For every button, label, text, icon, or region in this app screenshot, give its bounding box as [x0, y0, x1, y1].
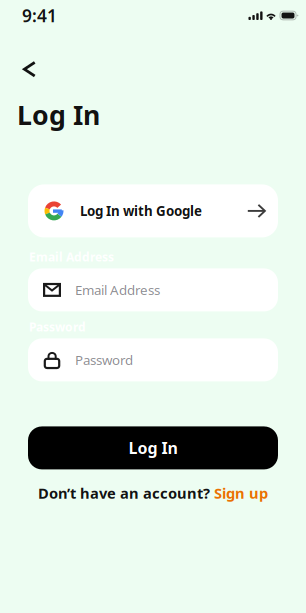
staticText: Don’t have an account?	[38, 483, 214, 503]
button[interactable]: Back	[0, 55, 50, 84]
button[interactable]: Log In with Google	[28, 184, 278, 237]
staticText: Log In with Google	[80, 202, 202, 220]
staticText: Password	[75, 351, 133, 369]
button[interactable]: Email Address	[28, 268, 278, 311]
staticText: Password	[29, 319, 86, 335]
staticText: Log In	[17, 97, 100, 132]
staticText: Log In	[128, 437, 177, 458]
staticText: Email Address	[75, 281, 160, 299]
button[interactable]: Sign up	[214, 483, 268, 503]
button[interactable]: Log In	[28, 426, 278, 469]
button[interactable]: Password	[28, 338, 278, 381]
staticText: Sign up	[214, 483, 268, 503]
staticText: Email Address	[29, 249, 114, 265]
staticText: 9:41	[22, 4, 57, 27]
